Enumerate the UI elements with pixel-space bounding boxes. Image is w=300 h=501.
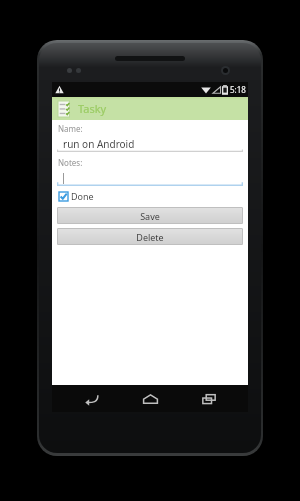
button[interactable]: Home — [131, 385, 169, 412]
staticText: Notes: — [58, 157, 83, 168]
staticText: Name: — [58, 123, 83, 134]
staticText: Tasky — [78, 101, 107, 116]
button[interactable]: Recent apps — [190, 385, 228, 412]
staticText: Save — [140, 210, 160, 222]
button[interactable]: Save — [57, 207, 243, 224]
button[interactable]: Back — [73, 385, 111, 412]
staticText: Delete — [136, 231, 164, 243]
staticText: 5:18 — [230, 84, 246, 95]
button[interactable]: Tasky app bar — [52, 97, 248, 120]
button[interactable]: Done — [59, 190, 94, 202]
staticText: Done — [71, 190, 94, 202]
button[interactable]: Delete — [57, 228, 243, 245]
staticText: run on Android — [63, 137, 135, 151]
button[interactable]: run on Android — [57, 136, 243, 152]
button[interactable] — [57, 170, 243, 186]
